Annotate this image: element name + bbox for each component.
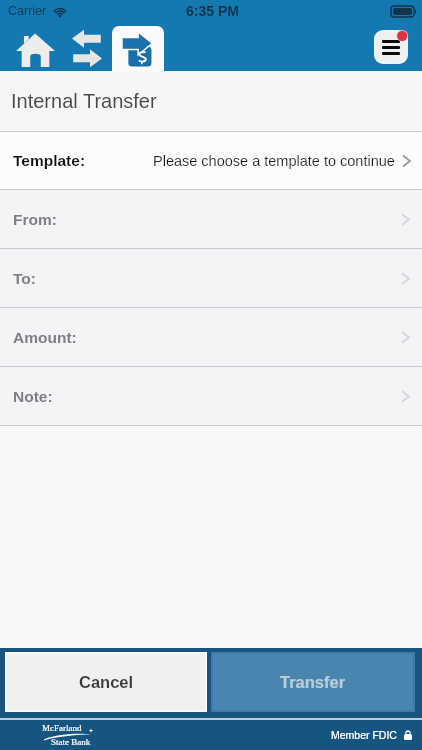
staticText: State Bank (51, 737, 91, 747)
staticText: Please choose a template to continue (153, 153, 395, 169)
staticText: Carrier (8, 4, 47, 18)
button[interactable]: Note: (0, 367, 422, 425)
staticText: 6:35 PM (186, 3, 239, 19)
button[interactable]: Internal Transfer (112, 26, 164, 71)
button[interactable]: Transfers (56, 22, 112, 71)
button[interactable]: Amount: (0, 308, 422, 366)
button[interactable]: From: (0, 190, 422, 248)
staticText: Transfer (280, 673, 346, 691)
button[interactable]: Template: (0, 132, 422, 189)
button[interactable]: Home (0, 22, 56, 71)
button[interactable]: Menu (372, 28, 410, 66)
button[interactable]: Transfer (213, 654, 413, 710)
staticText: Note: (13, 388, 53, 405)
staticText: From: (13, 211, 57, 228)
staticText: To: (13, 270, 36, 287)
button[interactable]: To: (0, 249, 422, 307)
staticText: Amount: (13, 329, 77, 346)
staticText: Internal Transfer (11, 90, 157, 112)
staticText: Cancel (79, 673, 134, 691)
button[interactable]: Cancel (7, 654, 205, 710)
staticText: Member FDIC (331, 729, 397, 741)
staticText: Template: (13, 152, 86, 169)
staticText: McFarland (42, 723, 82, 733)
